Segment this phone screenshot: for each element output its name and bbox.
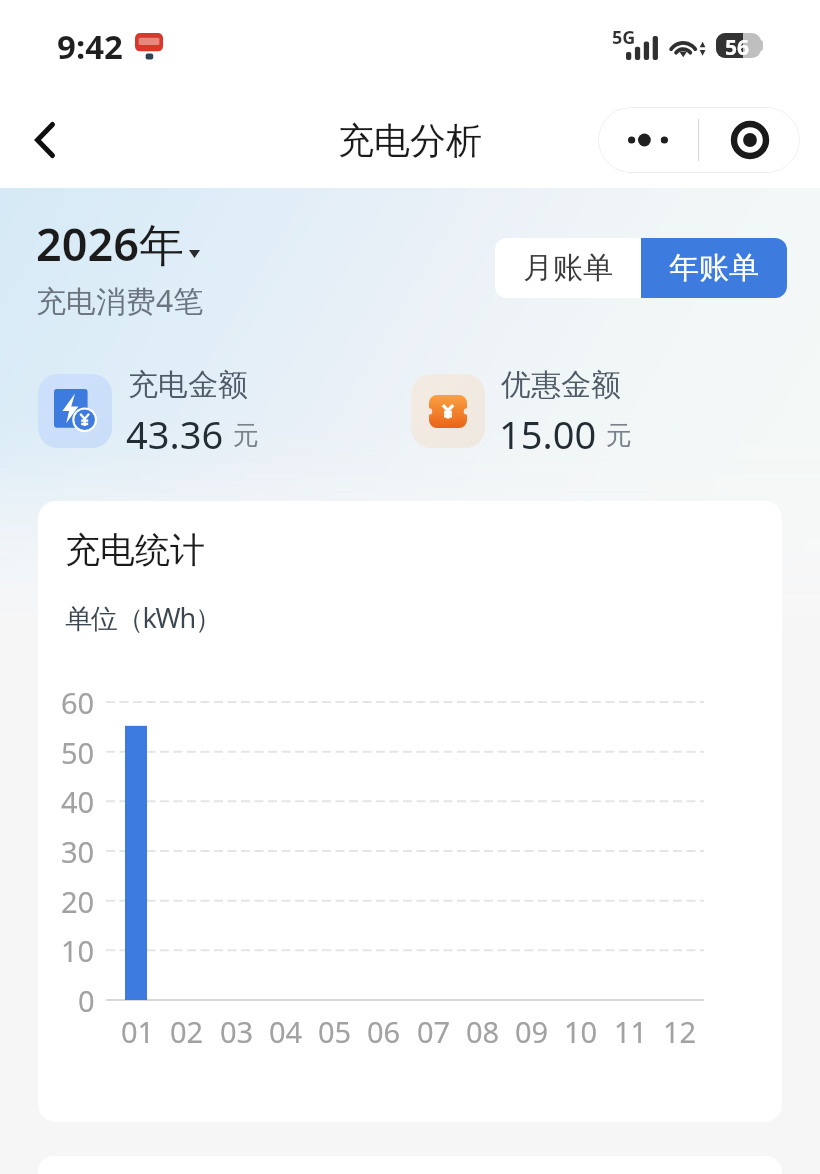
staticText: 15.00: [499, 408, 597, 460]
staticText: 60: [61, 683, 95, 722]
staticText: 充电统计: [65, 528, 205, 572]
button[interactable]: Close: [699, 107, 800, 173]
button[interactable]: More options: [598, 107, 698, 173]
staticText: 02: [170, 1012, 204, 1051]
staticText: 10: [61, 931, 95, 970]
staticText: 单位（kWh）: [65, 599, 221, 636]
staticText: 元: [233, 419, 259, 452]
staticText: 30: [61, 832, 95, 871]
staticText: 10: [564, 1012, 598, 1051]
staticText: 04: [269, 1012, 303, 1051]
staticText: 07: [417, 1012, 451, 1051]
staticText: 充电分析: [338, 118, 482, 163]
staticText: 09: [515, 1012, 549, 1051]
staticText: 充电消费4笔: [36, 280, 204, 321]
staticText: 2026年: [36, 213, 184, 274]
staticText: 20: [61, 882, 95, 921]
staticText: 0: [78, 981, 95, 1020]
button[interactable]: 优惠金额: [411, 374, 711, 448]
staticText: 11: [614, 1012, 648, 1051]
staticText: 充电金额: [128, 366, 248, 404]
staticText: 50: [61, 733, 95, 772]
staticText: 06: [367, 1012, 401, 1051]
staticText: 5G: [612, 25, 636, 50]
staticText: 9:42: [57, 24, 123, 69]
staticText: 元: [606, 419, 632, 452]
staticText: 优惠金额: [501, 366, 621, 404]
button[interactable]: 2026年: [36, 213, 204, 321]
staticText: 43.36: [126, 408, 224, 460]
button[interactable]: 年账单: [641, 238, 787, 298]
staticText: 01: [121, 1012, 155, 1051]
staticText: 40: [61, 782, 95, 821]
button[interactable]: 月账单: [495, 238, 641, 298]
staticText: 月账单: [523, 249, 613, 287]
staticText: 05: [318, 1012, 352, 1051]
button[interactable]: Back: [13, 108, 77, 172]
staticText: 08: [466, 1012, 500, 1051]
staticText: 12: [663, 1012, 697, 1051]
staticText: 03: [220, 1012, 254, 1051]
staticText: 年账单: [669, 249, 759, 287]
staticText: 56: [725, 33, 750, 58]
button[interactable]: 充电金额: [38, 374, 338, 448]
